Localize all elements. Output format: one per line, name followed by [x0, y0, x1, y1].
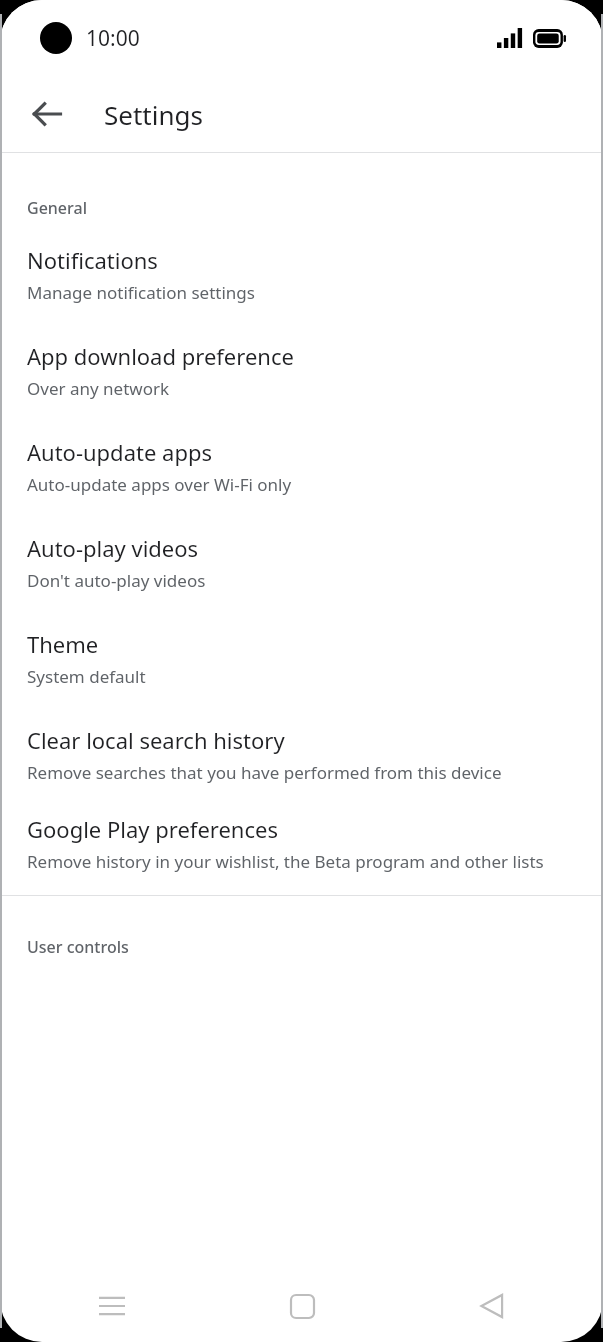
staticText: Auto-update apps	[27, 437, 212, 467]
staticText: Clear local search history	[27, 725, 285, 755]
staticText: Google Play preferences	[27, 814, 278, 844]
staticText: Remove searches that you have performed …	[27, 761, 502, 784]
staticText: Manage notification settings	[27, 281, 255, 304]
staticText: Theme	[27, 629, 99, 659]
staticText: Don't auto-play videos	[27, 569, 206, 592]
staticText: Settings	[104, 97, 203, 132]
staticText: App download preference	[27, 341, 294, 371]
staticText: User controls	[27, 936, 129, 958]
button[interactable]: Auto-play videos	[0, 533, 603, 592]
button[interactable]: Google Play preferences	[0, 814, 603, 873]
button[interactable]: Home	[270, 1274, 334, 1338]
button[interactable]: Back	[14, 81, 80, 147]
staticText: 10:00	[86, 24, 140, 53]
staticText: Auto-play videos	[27, 533, 199, 563]
staticText: Remove history in your wishlist, the Bet…	[27, 850, 544, 873]
staticText: General	[27, 197, 87, 219]
button[interactable]: Theme	[0, 629, 603, 688]
staticText: Over any network	[27, 377, 170, 400]
button[interactable]: Auto-update apps	[0, 437, 603, 496]
staticText: System default	[27, 665, 146, 688]
button[interactable]: App download preference	[0, 341, 603, 400]
button[interactable]: Clear local search history	[0, 725, 603, 784]
staticText: Notifications	[27, 245, 158, 275]
staticText: Auto-update apps over Wi-Fi only	[27, 473, 292, 496]
button[interactable]: Back	[460, 1274, 524, 1338]
button[interactable]: Recent apps	[80, 1274, 144, 1338]
button[interactable]: Notifications	[0, 245, 603, 304]
